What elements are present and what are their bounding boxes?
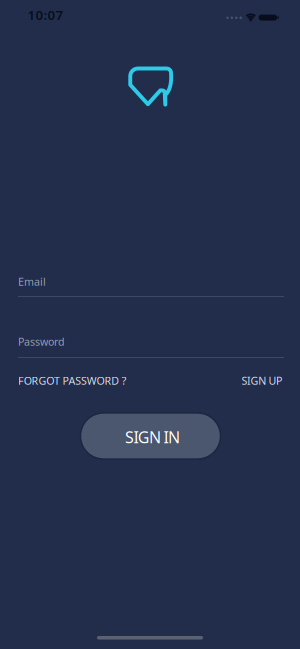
staticText: Password xyxy=(18,335,65,349)
staticText: SIGN IN xyxy=(125,426,180,448)
staticText: Email xyxy=(18,275,46,289)
staticText: SIGN UP xyxy=(241,374,282,388)
staticText: FORGOT PASSWORD ? xyxy=(18,374,127,388)
staticText: 10:07 xyxy=(27,6,63,24)
